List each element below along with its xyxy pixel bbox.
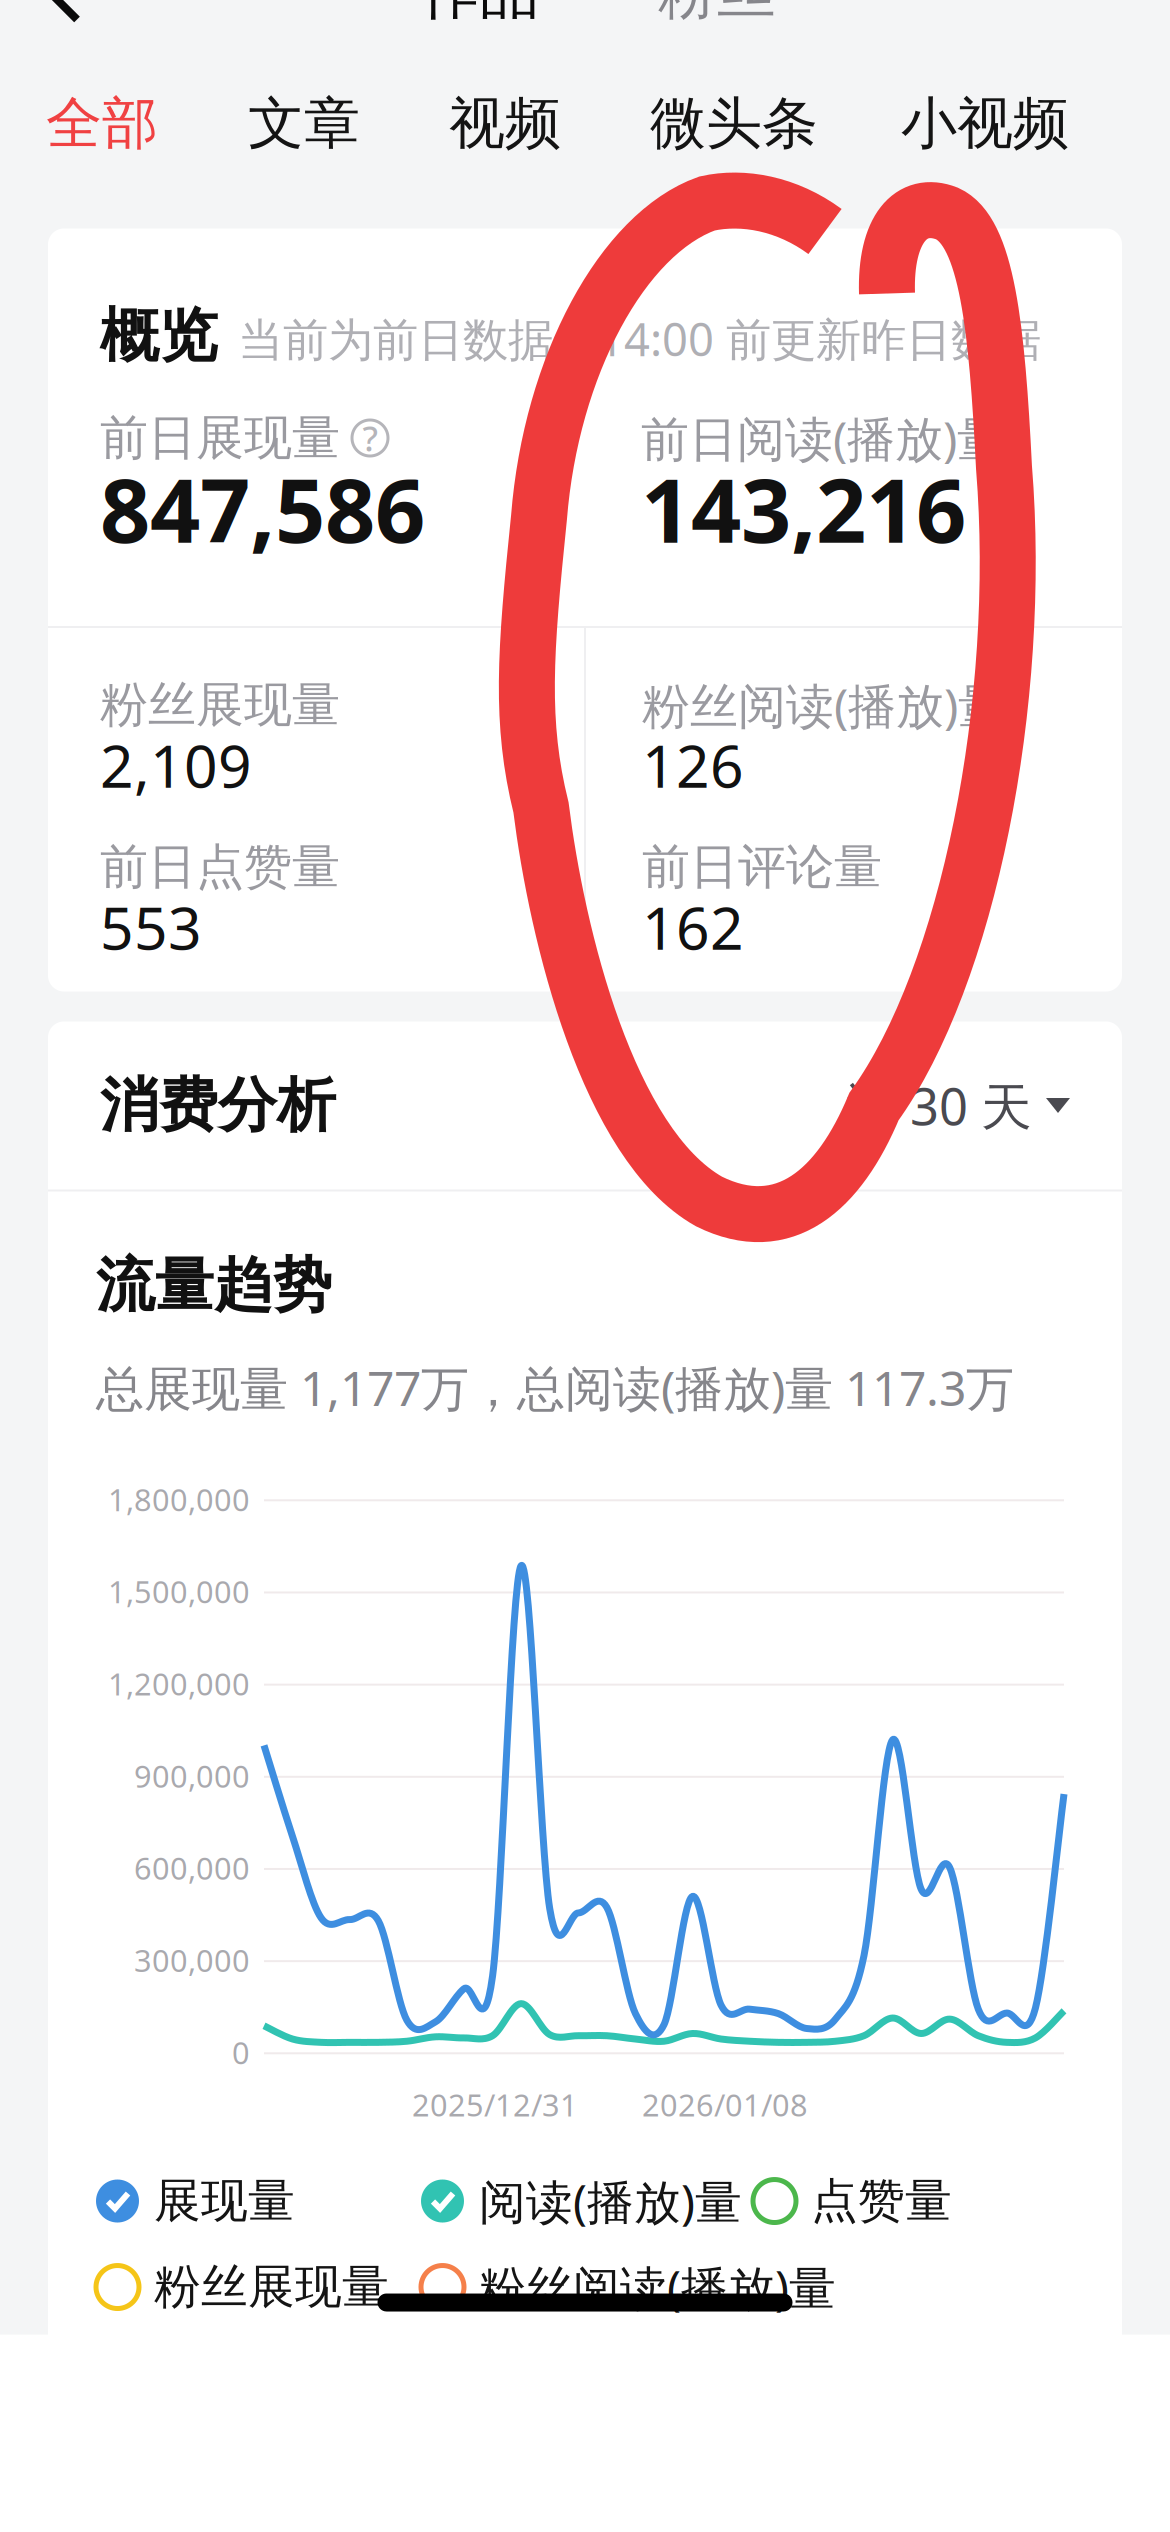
staticText: 300,000 <box>134 1940 250 1980</box>
staticText: 1,200,000 <box>108 1663 250 1704</box>
staticText: 600,000 <box>134 1848 250 1888</box>
staticText: 展现量 <box>154 2172 295 2230</box>
button[interactable]: 点赞量 <box>753 2169 952 2233</box>
staticText: 点赞量 <box>811 2172 952 2230</box>
button[interactable]: 视频 <box>437 70 573 176</box>
staticText: 当前为前日数据，14:00 前更新昨日数据 <box>238 308 1041 369</box>
staticText: 文章 <box>248 89 360 158</box>
staticText: 粉丝阅读(播放)量 <box>642 673 1006 737</box>
staticText: 消费分析 <box>100 1069 336 1142</box>
staticText: 0 <box>232 2032 250 2073</box>
button[interactable]: 小视频 <box>890 70 1080 176</box>
button[interactable]: 粉丝阅读(播放)量 <box>421 2255 836 2319</box>
staticText: 粉丝展现量 <box>100 675 340 734</box>
staticText: 概览 <box>100 300 218 372</box>
staticText: 900,000 <box>134 1755 250 1796</box>
staticText: 微头条 <box>650 89 818 158</box>
staticText: 前日展现量 <box>100 408 340 467</box>
staticText: 全部 <box>46 89 158 158</box>
staticText: 作品 <box>421 0 539 29</box>
staticText: 1,500,000 <box>108 1571 250 1612</box>
staticText: 小视频 <box>901 89 1069 158</box>
staticText: 粉丝展现量 <box>154 2258 389 2316</box>
staticText: 1,800,000 <box>108 1479 250 1520</box>
button[interactable]: 微头条 <box>639 70 829 176</box>
staticText: 粉丝阅读(播放)量 <box>479 2256 836 2318</box>
staticText: 前日阅读(播放)量 <box>641 406 1005 470</box>
staticText: 总展现量 1,177万，总阅读(播放)量 117.3万 <box>96 1356 1014 1419</box>
staticText: 视频 <box>449 89 561 158</box>
button[interactable]: 文章 <box>236 70 372 176</box>
button[interactable]: 粉丝展现量 <box>96 2255 389 2319</box>
staticText: 847,586 <box>100 450 425 567</box>
staticText: 2025/12/31 <box>412 2084 578 2125</box>
button[interactable]: 全部 <box>34 70 170 176</box>
staticText: 流量趋势 <box>96 1249 332 1322</box>
staticText: 前日点赞量 <box>100 837 340 896</box>
staticText: 前日评论量 <box>642 837 882 896</box>
staticText: 126 <box>642 726 744 804</box>
staticText: 143,216 <box>641 450 966 567</box>
button[interactable]: Back <box>0 0 128 54</box>
staticText: 162 <box>642 888 744 966</box>
staticText: 阅读(播放)量 <box>479 2170 742 2232</box>
staticText: ? <box>362 415 377 461</box>
staticText: 2,109 <box>100 726 252 804</box>
staticText: 2026/01/08 <box>642 2084 808 2125</box>
button[interactable]: 作品 <box>422 0 538 54</box>
staticText: 粉丝 <box>658 0 776 29</box>
staticText: 近 30 天 <box>846 1072 1032 1139</box>
button[interactable]: 展现量 <box>96 2169 295 2233</box>
staticText: 553 <box>100 888 202 966</box>
button[interactable]: 粉丝 <box>659 0 775 54</box>
button[interactable]: 阅读(播放)量 <box>421 2169 742 2233</box>
button[interactable]: 近 30 天 <box>846 1021 1070 1189</box>
